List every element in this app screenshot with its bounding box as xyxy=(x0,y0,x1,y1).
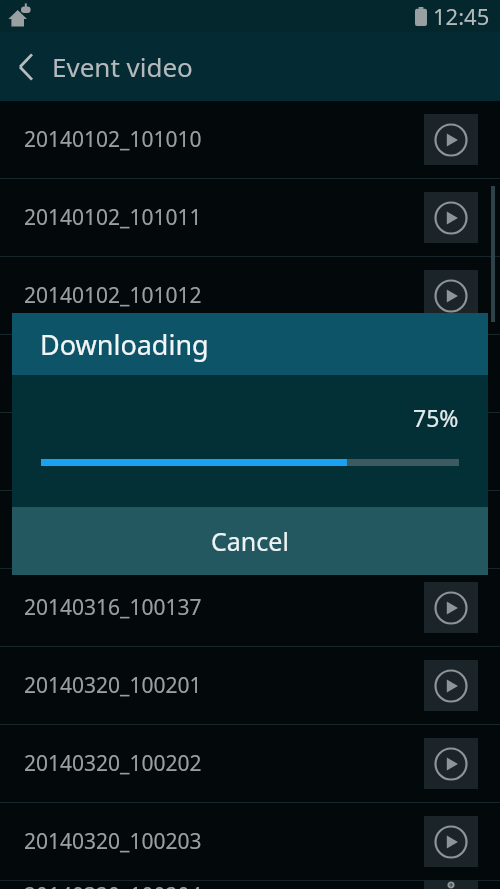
button[interactable]: Play video xyxy=(424,504,478,555)
button[interactable]: 20140102_101013 xyxy=(0,335,500,412)
button[interactable]: 20140102_101012 xyxy=(0,257,500,334)
button[interactable]: 20140102_101014 xyxy=(0,413,500,490)
staticText: 20140102_101012 xyxy=(24,281,424,310)
staticText: 20140102_101014 xyxy=(24,437,424,466)
button[interactable]: 20140102_101011 xyxy=(0,179,500,256)
button[interactable]: Play video xyxy=(424,426,478,477)
button[interactable]: Play video xyxy=(424,192,478,243)
button[interactable]: 20140320_100201 xyxy=(0,647,500,724)
staticText: 20140320_100203 xyxy=(24,827,424,856)
staticText: 75% xyxy=(413,402,459,433)
staticText: 20140320_100202 xyxy=(24,749,424,778)
button[interactable]: 20140320_100203 xyxy=(0,803,500,880)
staticText: 20140102_101010 xyxy=(24,125,424,154)
staticText: 20140102_101015 xyxy=(24,515,424,544)
button[interactable]: 20140102_101015 xyxy=(0,491,500,568)
button[interactable]: Back xyxy=(0,32,52,101)
staticText: Downloading xyxy=(40,326,209,363)
button[interactable]: Play video xyxy=(424,270,478,321)
button[interactable]: 20140320_100204 xyxy=(0,881,500,889)
button[interactable]: Play video xyxy=(424,881,478,889)
button[interactable]: 20140320_100202 xyxy=(0,725,500,802)
staticText: 12:45 xyxy=(433,1,490,31)
staticText: Event video xyxy=(52,49,193,84)
staticText: 20140316_100137 xyxy=(24,593,424,622)
staticText: 20140102_101013 xyxy=(24,359,424,388)
staticText: 20140320_100201 xyxy=(24,671,424,700)
button[interactable]: Play video xyxy=(424,114,478,165)
button[interactable]: Play video xyxy=(424,738,478,789)
button[interactable]: Play video xyxy=(424,582,478,633)
button[interactable]: 20140102_101010 xyxy=(0,101,500,178)
staticText: 20140102_101011 xyxy=(24,203,424,232)
button[interactable]: Cancel xyxy=(12,507,488,575)
staticText: 20140320_100204 xyxy=(24,881,424,889)
button[interactable]: Play video xyxy=(424,348,478,399)
button[interactable]: Play video xyxy=(424,660,478,711)
staticText: Cancel xyxy=(211,524,289,558)
button[interactable]: Play video xyxy=(424,816,478,867)
button[interactable]: 20140316_100137 xyxy=(0,569,500,646)
